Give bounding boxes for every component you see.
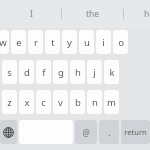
button[interactable]: w — [0, 30, 9, 54]
button[interactable]: s — [2, 60, 17, 84]
staticText: d — [24, 66, 30, 79]
staticText: t — [51, 36, 55, 49]
button[interactable]: y — [62, 30, 77, 54]
button[interactable]: u — [79, 30, 94, 54]
staticText: o — [118, 36, 124, 49]
staticText: . — [108, 126, 111, 138]
button[interactable]: v — [53, 90, 68, 114]
button[interactable]: I — [2, 0, 61, 28]
staticText: return — [124, 127, 147, 137]
staticText: he — [144, 8, 150, 20]
staticText: s — [7, 66, 12, 79]
staticText: f — [42, 66, 46, 79]
button[interactable]: k — [104, 60, 119, 84]
staticText: k — [109, 66, 115, 79]
button[interactable]: i — [96, 30, 111, 54]
staticText: b — [75, 96, 81, 109]
button[interactable]: h — [70, 60, 85, 84]
staticText: @ — [82, 127, 90, 138]
button[interactable]: d — [19, 60, 34, 84]
button[interactable]: x — [19, 90, 34, 114]
button[interactable]: z — [2, 90, 17, 114]
button[interactable]: Switch keyboard — [0, 120, 17, 144]
staticText: v — [58, 96, 63, 109]
button[interactable]: b — [70, 90, 85, 114]
staticText: g — [58, 66, 64, 79]
button[interactable]: . — [99, 120, 119, 144]
button[interactable]: c — [36, 90, 51, 114]
button[interactable]: g — [53, 60, 68, 84]
staticText: x — [24, 96, 30, 109]
button[interactable]: the — [63, 0, 123, 28]
staticText: e — [16, 36, 22, 49]
staticText: the — [86, 8, 100, 20]
button[interactable]: @ — [75, 120, 97, 144]
staticText: I — [30, 8, 33, 20]
staticText: c — [41, 96, 46, 109]
staticText: h — [75, 66, 81, 79]
button[interactable]: f — [36, 60, 51, 84]
staticText: y — [67, 36, 72, 49]
button[interactable]: o — [113, 30, 128, 54]
button[interactable]: j — [87, 60, 102, 84]
button[interactable]: e — [11, 30, 26, 54]
staticText: m — [107, 96, 116, 109]
staticText: i — [102, 36, 105, 49]
staticText: n — [92, 96, 98, 109]
button[interactable]: return — [121, 120, 150, 144]
staticText: j — [93, 66, 96, 79]
button[interactable]: he — [125, 0, 150, 28]
button[interactable]: n — [87, 90, 102, 114]
staticText: z — [7, 96, 12, 109]
staticText: w — [0, 36, 7, 49]
staticText: u — [84, 36, 90, 49]
button[interactable]: r — [28, 30, 43, 54]
staticText: r — [34, 36, 38, 49]
button[interactable]: m — [104, 90, 119, 114]
button[interactable]: t — [45, 30, 60, 54]
